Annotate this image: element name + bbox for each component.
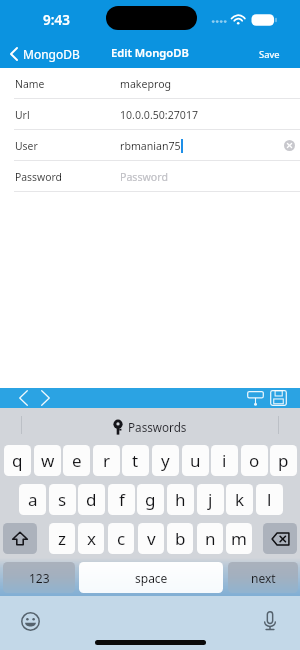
staticText: Edit MongoDB (111, 45, 189, 60)
button[interactable]: p (270, 445, 297, 476)
button[interactable]: Passwords (113, 419, 187, 435)
button[interactable]: Shift (3, 523, 37, 554)
button[interactable]: l (256, 484, 283, 515)
staticText: p (278, 449, 289, 472)
staticText: 10.0.0.50:27017 (120, 108, 199, 122)
button[interactable]: r (93, 445, 120, 476)
staticText: b (175, 527, 186, 550)
button[interactable]: User (0, 130, 300, 161)
staticText: User (15, 139, 38, 153)
button[interactable]: m (226, 523, 252, 554)
button[interactable]: q (4, 445, 31, 476)
button[interactable]: y (152, 445, 179, 476)
staticText: o (249, 449, 260, 472)
staticText: 9:43 (43, 11, 70, 29)
staticText: j (208, 488, 213, 511)
staticText: makeprog (120, 77, 172, 91)
staticText: x (87, 527, 96, 550)
staticText: f (119, 488, 125, 511)
button[interactable]: Previous field (13, 388, 34, 408)
button[interactable]: k (226, 484, 253, 515)
button[interactable]: MongoDB (0, 44, 86, 64)
staticText: k (235, 488, 245, 511)
button[interactable]: Next field (35, 388, 56, 408)
button[interactable]: b (167, 523, 193, 554)
button[interactable]: d (78, 484, 105, 515)
staticText: y (161, 449, 170, 472)
button[interactable]: w (34, 445, 61, 476)
button[interactable]: f (108, 484, 135, 515)
button[interactable]: Password (0, 161, 300, 192)
button[interactable]: i (211, 445, 238, 476)
staticText: rbmanian75 (120, 139, 181, 153)
staticText: t (132, 449, 139, 472)
staticText: m (231, 527, 247, 550)
staticText: Passwords (128, 419, 187, 435)
button[interactable]: Dictation (258, 609, 282, 633)
staticText: n (205, 527, 216, 550)
button[interactable]: x (78, 523, 104, 554)
staticText: r (103, 449, 111, 472)
button[interactable]: a (19, 484, 46, 515)
staticText: s (58, 488, 67, 511)
button[interactable]: u (182, 445, 209, 476)
button[interactable]: space (79, 562, 223, 593)
staticText: Password (15, 170, 62, 184)
button[interactable]: g (137, 484, 164, 515)
staticText: w (41, 449, 55, 472)
staticText: l (267, 488, 272, 511)
button[interactable]: o (241, 445, 268, 476)
staticText: Save (259, 48, 280, 61)
staticText: next (251, 570, 276, 586)
staticText: Name (15, 77, 45, 91)
staticText: MongoDB (23, 46, 80, 62)
staticText: c (117, 527, 126, 550)
button[interactable]: Emoji (18, 609, 42, 633)
button[interactable]: j (197, 484, 224, 515)
staticText: space (135, 570, 168, 586)
button[interactable]: v (138, 523, 164, 554)
staticText: q (12, 449, 23, 472)
button[interactable]: next (228, 562, 298, 593)
staticText: d (86, 488, 97, 511)
button[interactable]: Save (249, 45, 300, 64)
staticText: Url (15, 108, 30, 122)
button[interactable]: Hide keyboard (245, 389, 265, 407)
button[interactable]: c (108, 523, 134, 554)
button[interactable]: Clear text (284, 140, 295, 151)
staticText: 123 (29, 570, 50, 586)
button[interactable]: Save (268, 389, 288, 407)
button[interactable]: h (167, 484, 194, 515)
staticText: a (28, 488, 38, 511)
staticText: Password (120, 170, 168, 184)
button[interactable]: t (122, 445, 149, 476)
button[interactable]: Backspace (263, 523, 297, 554)
staticText: u (190, 449, 201, 472)
staticText: i (222, 449, 227, 472)
staticText: g (145, 488, 156, 511)
button[interactable]: e (63, 445, 90, 476)
button[interactable]: z (49, 523, 75, 554)
button[interactable]: 123 (3, 562, 75, 593)
button[interactable]: Name (0, 68, 300, 99)
staticText: e (72, 449, 82, 472)
button[interactable]: Url (0, 99, 300, 130)
staticText: h (175, 488, 186, 511)
staticText: v (147, 527, 156, 550)
staticText: z (58, 527, 66, 550)
button[interactable]: n (197, 523, 223, 554)
button[interactable]: s (49, 484, 76, 515)
